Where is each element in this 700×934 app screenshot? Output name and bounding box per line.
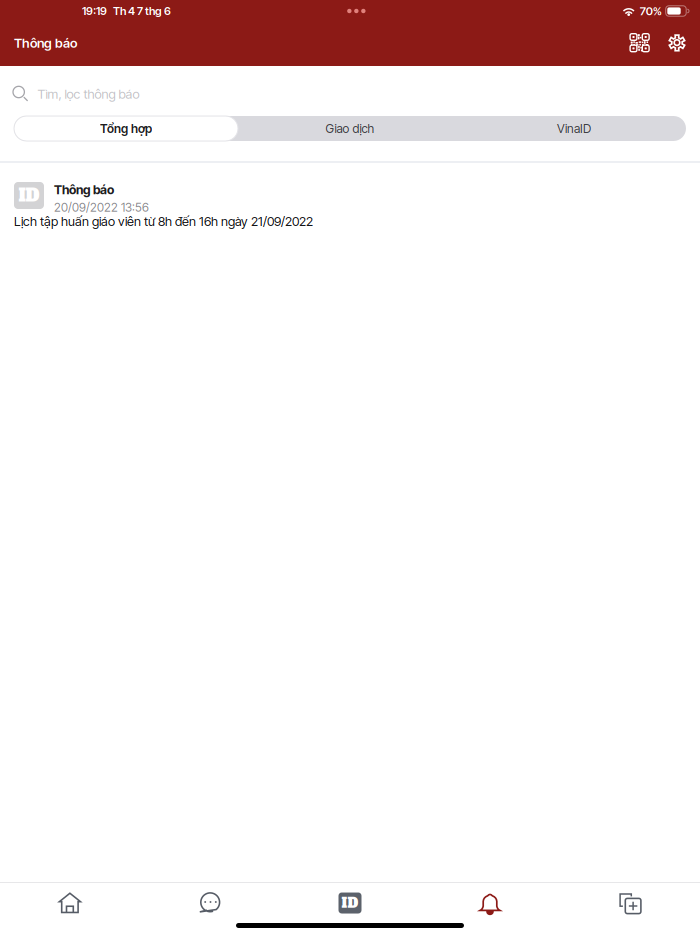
button[interactable]: Trang chủ [0, 884, 140, 921]
button[interactable]: Tin nhắn [140, 884, 280, 921]
staticText: Thông báo [14, 35, 77, 51]
staticText: Tổng hợp [100, 121, 152, 136]
staticText: 19:19 Th 4 7 thg 6 [82, 4, 171, 18]
button[interactable]: Thông báo [420, 884, 560, 921]
staticText: Thông báo [54, 182, 114, 197]
button[interactable]: Giao dịch [238, 116, 462, 141]
button[interactable]: VinaID [462, 116, 686, 141]
staticText: 70% [640, 4, 662, 18]
button[interactable]: Thêm [560, 884, 700, 921]
button[interactable]: Tổng hợp [14, 116, 238, 141]
staticText: ID [18, 184, 39, 207]
staticText: VinaID [557, 121, 591, 136]
staticText: 20/09/2022 13:56 [54, 200, 149, 215]
button[interactable]: Quét mã QR [618, 28, 649, 58]
button[interactable]: Cài đặt [661, 28, 693, 58]
staticText: Lịch tập huấn giáo viên từ 8h đến 16h ng… [14, 214, 313, 229]
staticText: ID [341, 894, 358, 912]
button[interactable]: VinaID [280, 884, 420, 921]
staticText: Giao dịch [325, 121, 374, 136]
staticText: Tìm, lọc thông báo [37, 86, 139, 102]
